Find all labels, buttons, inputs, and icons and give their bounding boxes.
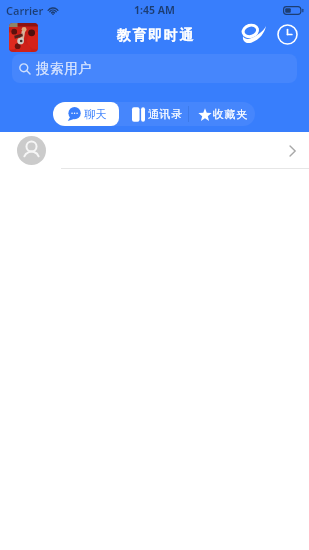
button[interactable]: 通讯录 [119,102,188,126]
button[interactable] [0,132,309,169]
button[interactable]: 聊天 [53,102,119,126]
staticText: 1:45 AM [134,3,175,17]
staticText: 收藏夹 [213,107,248,121]
staticText: 聊天 [84,107,108,121]
button[interactable]: App logo [240,20,268,48]
button[interactable]: 收藏夹 [189,102,255,126]
staticText: Carrier [6,3,44,18]
staticText: 通讯录 [148,107,183,121]
staticText: 搜索用户 [36,60,93,77]
button[interactable]: Profile photo [9,23,38,52]
button[interactable]: 搜索用户 [12,54,297,83]
staticText: 教育即时通 [116,27,194,45]
button[interactable]: History [273,20,301,48]
